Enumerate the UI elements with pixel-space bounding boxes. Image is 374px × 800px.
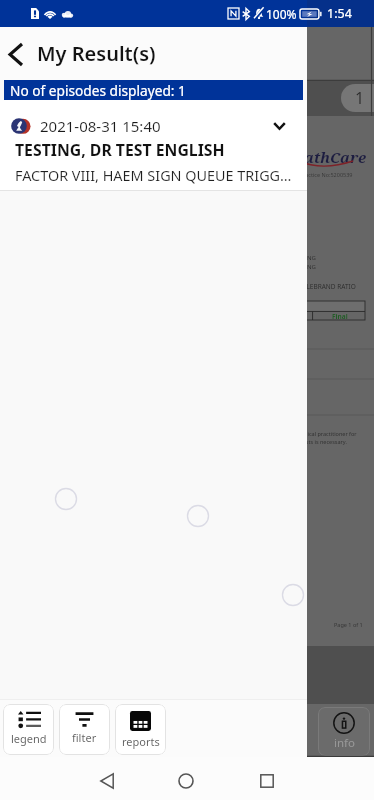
button[interactable]: Back [86,760,127,800]
staticText: No of episodes displayed: 1 [10,81,186,100]
staticText: athCare [304,147,367,167]
staticText: My Result(s) [37,40,156,67]
staticText: legend [11,731,47,746]
button[interactable]: Info [318,707,370,756]
button[interactable]: legend [3,704,54,755]
staticText: gists is necessary. [301,438,347,445]
staticText: 1 [355,87,365,109]
staticText: info [334,735,355,751]
staticText: ractice No:5200539 [303,171,353,178]
button[interactable]: filter [59,704,110,755]
staticText: 100% [266,6,297,22]
staticText: reports [122,734,160,749]
button[interactable]: 2021-08-31 15:40 [0,100,307,191]
staticText: 1:54 [327,5,352,22]
button[interactable]: reports [115,704,166,755]
staticText: Page 1 of 1 [334,621,363,628]
staticText: TESTING, DR TEST ENGLISH [15,139,225,161]
staticText: LLEBRAND RATIO [303,282,356,291]
button[interactable]: Home [165,760,206,800]
staticText: edical practitioner for [301,430,357,437]
staticText: filter [72,730,97,745]
button[interactable]: Recents [246,760,287,800]
staticText: Final [332,312,348,321]
staticText: 2021-08-31 15:40 [40,116,161,136]
staticText: ING [305,263,316,271]
button[interactable]: Back [0,32,32,76]
staticText: FACTOR VIII, HAEM SIGN QUEUE TRIGG… [15,166,292,186]
staticText: ING [305,254,316,262]
